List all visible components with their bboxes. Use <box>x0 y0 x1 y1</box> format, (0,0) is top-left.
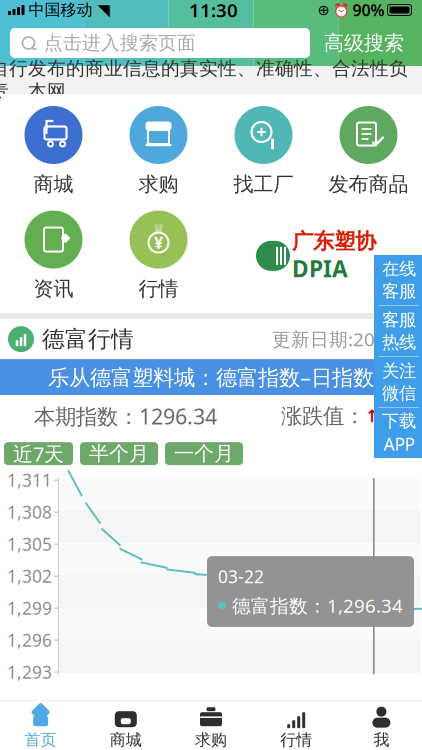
staticText: 商城 <box>110 730 142 750</box>
staticText: 求购 <box>138 172 178 197</box>
button[interactable]: 客服 <box>374 306 422 356</box>
staticText: 微信 <box>382 382 416 404</box>
button[interactable]: 点击进入搜索页面 <box>10 28 310 58</box>
staticText: DPIA <box>292 253 348 283</box>
staticText: 发布商品 <box>328 172 408 197</box>
staticText: 一个月 <box>174 441 234 466</box>
staticText: 德富指数：1,296.34 <box>232 593 403 618</box>
staticText: ◥ <box>97 1 109 19</box>
staticText: ¥ <box>154 232 163 253</box>
staticText: 客服 <box>382 280 416 302</box>
staticText: 首页 <box>25 730 57 750</box>
staticText: 客服 <box>382 309 416 330</box>
staticText: 半个月 <box>89 441 149 466</box>
staticText: 行情 <box>138 277 178 301</box>
button[interactable]: 商城 <box>1 106 106 197</box>
button[interactable]: 求购 <box>168 706 254 750</box>
staticText: 高级搜索 <box>324 31 404 55</box>
staticText: ♕ <box>152 221 164 236</box>
staticText: 1,308 <box>7 501 52 524</box>
staticText: 关注 <box>382 360 416 381</box>
button[interactable]: 行情 <box>254 706 339 750</box>
staticText: 在线 <box>382 258 416 279</box>
staticText: 下载 <box>382 410 416 432</box>
staticText: 1,296 <box>7 629 52 652</box>
button[interactable]: 在线 <box>374 255 422 305</box>
staticText: 求购 <box>195 730 227 750</box>
button[interactable]: 一个月 <box>165 442 243 465</box>
button[interactable]: 我 <box>339 706 422 750</box>
button[interactable]: 资讯 <box>1 211 106 301</box>
staticText: 1,293 <box>7 661 52 684</box>
button[interactable]: 商城 <box>83 706 168 750</box>
button[interactable]: 下载 <box>374 408 422 458</box>
staticText: ⊕ <box>317 2 329 18</box>
staticText: 资讯 <box>33 277 73 301</box>
staticText: 近7天 <box>13 440 64 467</box>
staticText: 本期指数：1296.34 <box>34 402 217 430</box>
staticText: 找工厂 <box>233 172 293 197</box>
staticText: 我 <box>373 730 389 750</box>
staticText: 1,299 <box>7 597 52 620</box>
staticText: 更新日期:2022-0 <box>272 327 414 351</box>
staticText: 自行发布的商业信息的真实性、准确性、合法性负责，本网 <box>0 57 408 103</box>
button[interactable]: ♕ <box>106 211 211 301</box>
staticText: 中国移动 <box>28 0 92 20</box>
staticText: 1,302 <box>7 565 52 588</box>
button[interactable]: 半个月 <box>80 442 158 465</box>
staticText: 03-22 <box>218 565 264 588</box>
staticText: 点击进入搜索页面 <box>44 31 196 54</box>
staticText: APP <box>383 433 414 456</box>
staticText: 德富行情 <box>42 325 134 353</box>
staticText: 1,305 <box>7 533 52 556</box>
staticText: ↑ <box>365 406 380 426</box>
staticText: 11:30 <box>189 0 238 22</box>
staticText: 商城 <box>33 172 73 197</box>
staticText: 乐从德富塑料城：德富指数–日指数 <box>48 363 374 391</box>
staticText: 行情 <box>280 730 312 750</box>
staticText: 热线 <box>382 331 416 353</box>
button[interactable]: 找工厂 <box>211 106 316 197</box>
button[interactable]: 发布商品 <box>316 106 421 197</box>
staticText: ⏰ <box>332 2 349 18</box>
button[interactable]: 近7天 <box>4 442 73 465</box>
staticText: 1,311 <box>7 469 52 492</box>
staticText: 0.2 <box>380 402 410 430</box>
button[interactable]: 高级搜索 <box>316 28 412 58</box>
button[interactable]: 关注 <box>374 357 422 407</box>
button[interactable]: 首页 <box>0 706 83 750</box>
button[interactable]: 求购 <box>106 106 211 197</box>
staticText: 广东塑协 <box>292 228 376 254</box>
staticText: 涨跌值： <box>281 403 365 429</box>
staticText: 90% <box>352 0 384 21</box>
